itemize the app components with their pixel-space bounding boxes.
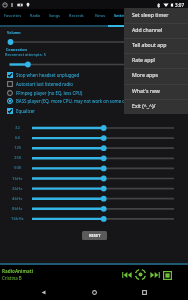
button[interactable]: Tell about app	[124, 38, 188, 53]
staticText: What's new	[132, 87, 160, 94]
staticText: 2kHz	[12, 186, 23, 192]
staticText: 250	[14, 155, 22, 161]
staticText: Reconnect attempts: 5	[5, 52, 46, 57]
staticText: Add channel	[132, 26, 163, 33]
button[interactable]: Stop	[162, 270, 172, 280]
button[interactable]: Rate app!	[124, 53, 188, 68]
staticText: Set sleep timer	[132, 11, 169, 18]
staticText: Songs	[49, 13, 60, 18]
staticText: Exit (^_^)/	[132, 102, 156, 109]
button[interactable]: Songs	[45, 13, 64, 18]
button[interactable]: Settings	[112, 13, 132, 18]
staticText: Cristina B	[2, 275, 22, 281]
staticText: FFmpeg player (no EQ, less CPU)	[16, 90, 83, 96]
staticText: Autostart last listened radio	[16, 81, 74, 87]
button[interactable]: Exit (^_^)/	[124, 99, 188, 114]
staticText: Rate app!	[132, 56, 155, 63]
staticText: Settings	[114, 13, 130, 18]
staticText: 16kHz	[11, 216, 24, 222]
button[interactable]: BASS player (EQ, more CPU, may not work …	[0, 96, 188, 105]
button[interactable]: Autostart last listened radio	[0, 79, 188, 88]
staticText: More apps	[132, 71, 158, 78]
button[interactable]: What's new	[124, 84, 188, 99]
button[interactable]: Back	[36, 285, 51, 300]
button[interactable]: Equalizer	[0, 106, 188, 115]
staticText: 1kHz	[12, 176, 23, 182]
staticText: 125	[14, 145, 22, 151]
staticText: Volume:	[7, 30, 22, 35]
staticText: RESET	[89, 233, 101, 238]
button[interactable]: More apps	[124, 68, 188, 83]
button[interactable]: Next track	[149, 269, 160, 280]
button[interactable]: Records	[64, 13, 89, 18]
staticText: Stop when headset unplugged	[16, 72, 80, 78]
button[interactable]: Play	[134, 268, 147, 281]
staticText: BASS player (EQ, more CPU, may not work …	[16, 98, 139, 104]
button[interactable]: FFmpeg player (no EQ, less CPU)	[0, 88, 188, 97]
staticText: Equalizer	[16, 108, 35, 114]
staticText: 3:07	[175, 2, 185, 8]
staticText: 64	[15, 135, 20, 141]
button[interactable]: Home	[87, 285, 102, 300]
staticText: 32	[15, 125, 20, 131]
button[interactable]: Stop when headset unplugged	[0, 70, 188, 79]
staticText: Connection	[6, 47, 27, 52]
staticText: Tell about app	[132, 41, 167, 48]
button[interactable]: News	[89, 13, 112, 18]
staticText: RadioAnimati	[2, 268, 34, 274]
button[interactable]: RESET	[82, 231, 107, 240]
button[interactable]: Recent apps	[137, 285, 152, 300]
staticText: 4kHz	[12, 196, 23, 202]
staticText: 8kHz	[12, 206, 23, 212]
button[interactable]: Set sleep timer	[124, 8, 188, 23]
button[interactable]: Favorites	[0, 13, 26, 18]
staticText: Radio	[30, 13, 41, 18]
staticText: Records	[69, 13, 84, 18]
staticText: 500	[14, 165, 22, 171]
button[interactable]: Add channel	[124, 23, 188, 38]
button[interactable]: Radio	[26, 13, 45, 18]
staticText: Favorites	[4, 13, 22, 18]
button[interactable]: Previous track	[121, 269, 132, 280]
staticText: News	[95, 13, 106, 18]
